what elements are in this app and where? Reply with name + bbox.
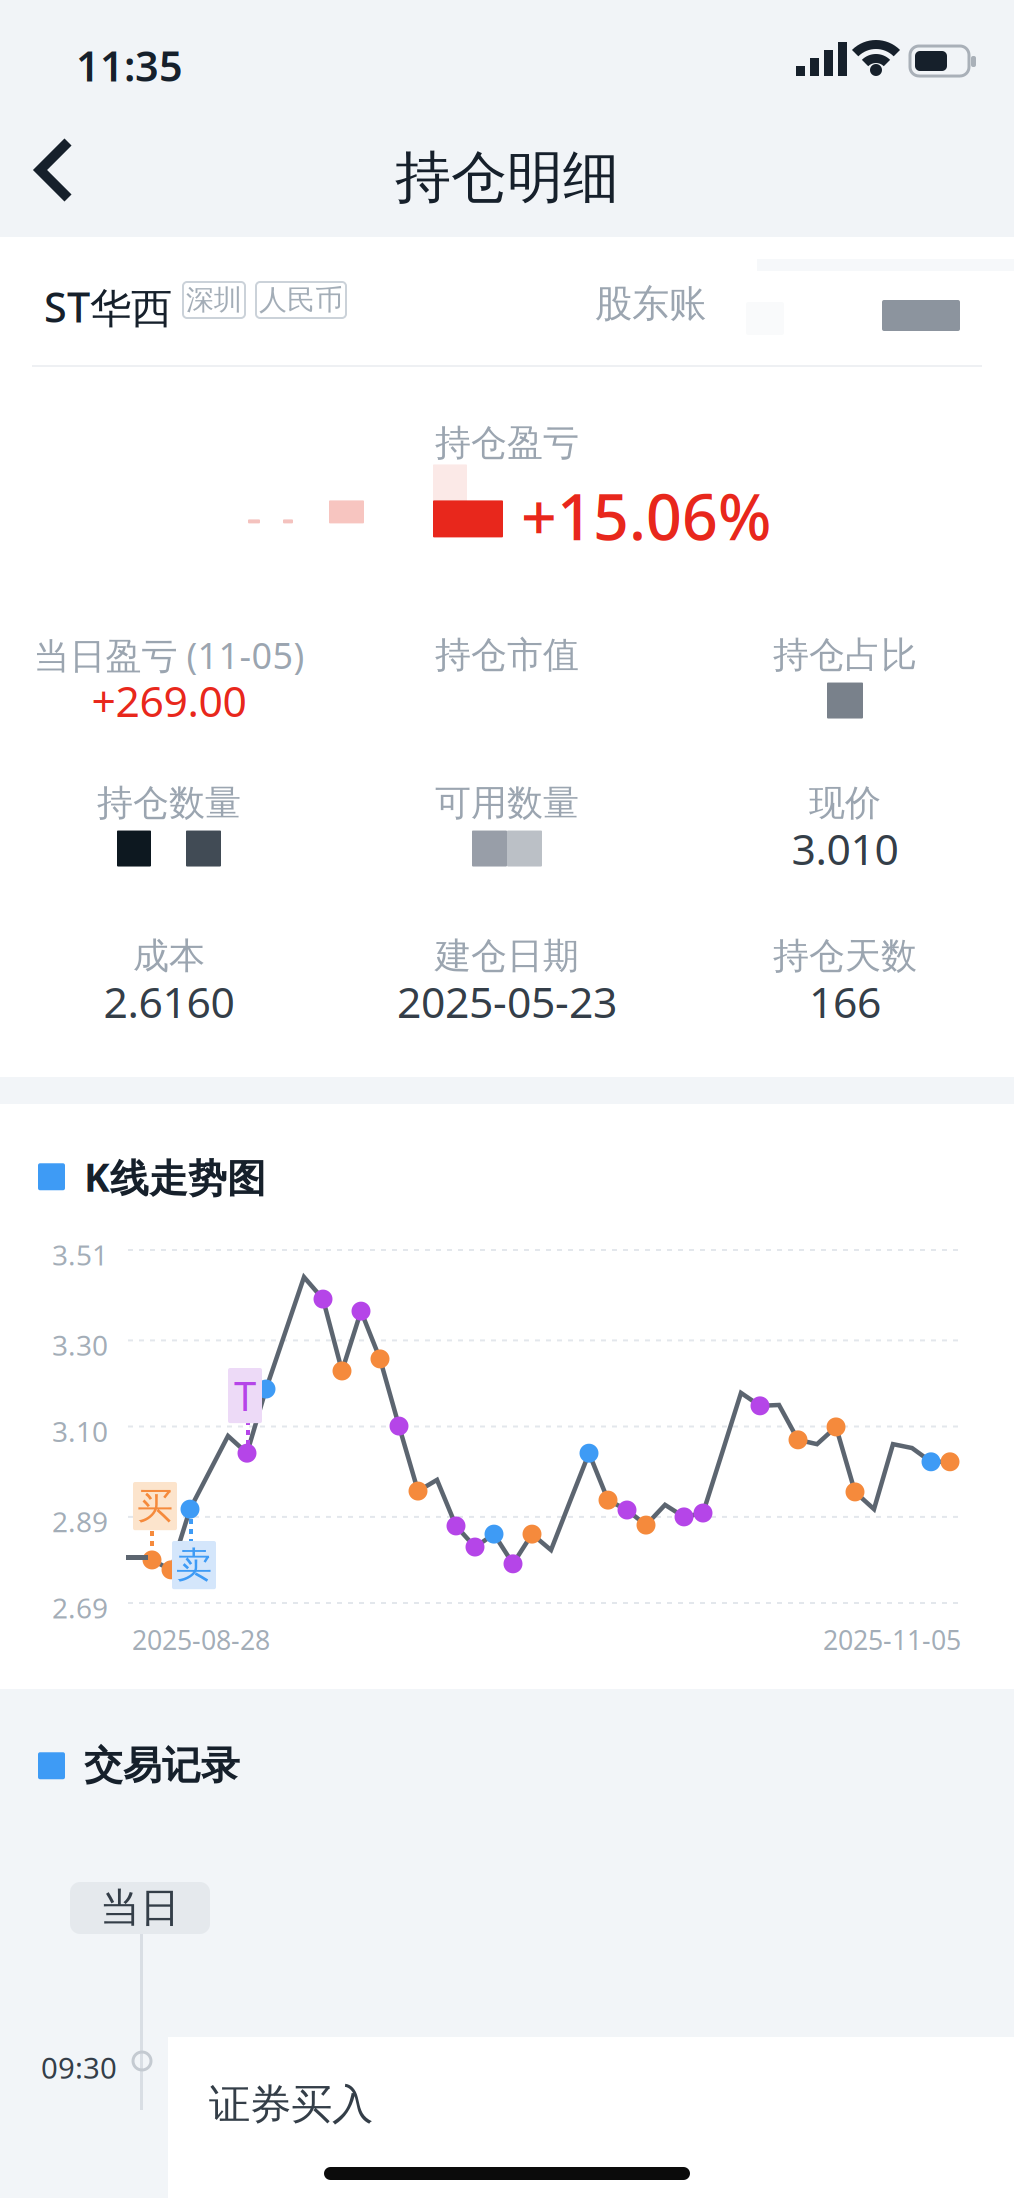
staticText: 卖 xyxy=(176,1543,212,1587)
staticText: 3.010 xyxy=(791,820,898,877)
staticText: 现价 xyxy=(809,781,881,825)
staticText: 买 xyxy=(137,1484,173,1528)
staticText: 证券买入 xyxy=(209,2079,373,2130)
staticText: 人民币 xyxy=(259,283,343,317)
staticText: 成本 xyxy=(133,934,205,978)
staticText: 3.51 xyxy=(52,1236,108,1273)
staticText: 当日 xyxy=(100,1883,180,1932)
staticText: 持仓盈亏 xyxy=(435,421,579,465)
staticText: 交易记录 xyxy=(84,1742,240,1789)
staticText: +15.06% xyxy=(521,474,771,558)
staticText: 建仓日期 xyxy=(435,934,579,978)
staticText: 2025-05-23 xyxy=(397,973,617,1030)
staticText: 2025-08-28 xyxy=(132,1622,270,1657)
button[interactable]: Back xyxy=(8,118,98,222)
button[interactable]: 证券买入 xyxy=(168,2037,1014,2198)
staticText: +269.00 xyxy=(91,672,246,729)
staticText: 3.10 xyxy=(52,1412,108,1450)
staticText: K线走势图 xyxy=(84,1151,266,1202)
staticText: 可用数量 xyxy=(435,781,579,825)
staticText: ST华西 xyxy=(44,279,172,334)
staticText: 深圳 xyxy=(186,283,242,317)
staticText: 3.30 xyxy=(52,1326,108,1364)
staticText: 2.69 xyxy=(52,1589,108,1626)
staticText: 09:30 xyxy=(41,2048,117,2087)
staticText: 持仓数量 xyxy=(97,781,241,825)
staticText: 当日盈亏 (11-05) xyxy=(33,631,304,679)
staticText: 2025-11-05 xyxy=(823,1622,961,1657)
staticText: T xyxy=(234,1369,256,1422)
staticText: 11:35 xyxy=(76,38,183,93)
staticText: 股东账 xyxy=(595,281,706,327)
staticText: 2.6160 xyxy=(103,973,234,1030)
staticText: 持仓占比 xyxy=(773,633,917,677)
staticText: 持仓明细 xyxy=(395,143,619,212)
staticText: 持仓天数 xyxy=(773,934,917,978)
staticText: 2.89 xyxy=(52,1503,108,1540)
staticText: 166 xyxy=(809,973,881,1030)
staticText: 持仓市值 xyxy=(435,633,579,677)
